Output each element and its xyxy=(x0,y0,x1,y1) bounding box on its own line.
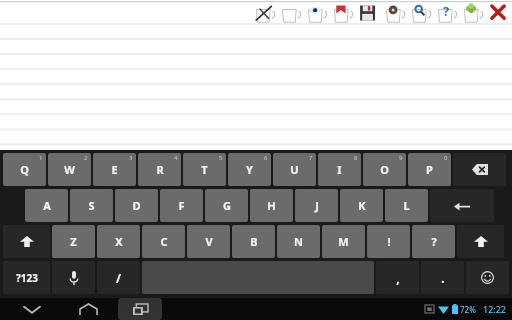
button[interactable]: Shift xyxy=(3,225,50,258)
staticText: R xyxy=(156,162,164,177)
button[interactable]: D xyxy=(115,189,158,222)
button[interactable]: / xyxy=(97,261,140,294)
button[interactable]: N xyxy=(277,225,320,258)
button[interactable]: ?123 xyxy=(3,261,50,294)
button[interactable]: Close xyxy=(486,1,510,25)
button[interactable]: L xyxy=(385,189,428,222)
staticText: / xyxy=(116,270,121,286)
staticText: 6 xyxy=(264,154,268,162)
button[interactable]: W xyxy=(48,153,91,186)
staticText: L xyxy=(403,198,410,213)
button[interactable]: U xyxy=(273,153,316,186)
button[interactable]: Emoji xyxy=(466,261,509,294)
staticText: Q xyxy=(20,162,29,177)
button[interactable]: A xyxy=(25,189,68,222)
button[interactable]: Recent apps xyxy=(118,298,162,320)
button[interactable]: Bookmark xyxy=(330,1,354,25)
button[interactable]: New xyxy=(278,1,302,25)
staticText: ! xyxy=(387,234,391,249)
staticText: A xyxy=(43,198,51,213)
staticText: P xyxy=(426,162,433,177)
staticText: G xyxy=(223,198,231,213)
staticText: 72% xyxy=(460,304,476,315)
button[interactable]: Z xyxy=(52,225,95,258)
button[interactable]: Find xyxy=(408,1,432,25)
button[interactable]: Y xyxy=(228,153,271,186)
button[interactable]: Backspace xyxy=(453,153,506,186)
button[interactable]: ? xyxy=(412,225,455,258)
staticText: 2 xyxy=(84,154,88,162)
button[interactable]: Home xyxy=(66,298,110,320)
staticText: ? xyxy=(443,2,450,20)
staticText: V xyxy=(205,234,213,249)
staticText: J xyxy=(315,198,319,213)
button[interactable]: ! xyxy=(367,225,410,258)
staticText: D xyxy=(132,198,141,213)
button[interactable]: Q xyxy=(3,153,46,186)
staticText: , xyxy=(396,270,400,286)
staticText: Z xyxy=(70,234,77,249)
button[interactable]: . xyxy=(421,261,464,294)
staticText: 3 xyxy=(129,154,133,162)
staticText: 8 xyxy=(354,154,358,162)
button[interactable]: Print xyxy=(382,1,406,25)
button[interactable]: , xyxy=(376,261,419,294)
staticText: K xyxy=(358,198,366,213)
button[interactable]: H xyxy=(250,189,293,222)
staticText: T xyxy=(201,162,208,177)
staticText: ?123 xyxy=(16,271,38,285)
staticText: 0 xyxy=(444,154,448,162)
button[interactable]: T xyxy=(183,153,226,186)
staticText: F xyxy=(178,198,185,213)
staticText: 5 xyxy=(219,154,223,162)
button[interactable]: K xyxy=(340,189,383,222)
staticText: O xyxy=(380,162,389,177)
staticText: M xyxy=(338,234,349,249)
button[interactable]: Tree xyxy=(460,1,484,25)
button[interactable]: X xyxy=(97,225,140,258)
button[interactable]: S xyxy=(70,189,113,222)
staticText: ? xyxy=(431,234,437,249)
staticText: 12:22 xyxy=(483,303,507,315)
button[interactable]: G xyxy=(205,189,248,222)
button[interactable]: F xyxy=(160,189,203,222)
button[interactable]: View xyxy=(304,1,328,25)
staticText: 7 xyxy=(309,154,313,162)
button[interactable]: V xyxy=(187,225,230,258)
staticText: 1 xyxy=(39,154,43,162)
button[interactable]: Save xyxy=(356,1,380,25)
button[interactable]: R xyxy=(138,153,181,186)
staticText: . xyxy=(441,270,445,286)
button[interactable]: Undo xyxy=(252,1,276,25)
staticText: E xyxy=(111,162,118,177)
staticText: I xyxy=(337,162,342,177)
staticText: N xyxy=(294,234,303,249)
button[interactable]: M xyxy=(322,225,365,258)
button[interactable]: J xyxy=(295,189,338,222)
staticText: W xyxy=(64,162,75,177)
staticText: X xyxy=(115,234,123,249)
button[interactable]: P xyxy=(408,153,451,186)
staticText: C xyxy=(160,234,168,249)
button[interactable]: Voice input xyxy=(52,261,95,294)
button[interactable]: E xyxy=(93,153,136,186)
staticText: U xyxy=(290,162,299,177)
button[interactable]: B xyxy=(232,225,275,258)
staticText: S xyxy=(88,198,95,213)
staticText: H xyxy=(267,198,276,213)
button[interactable]: Help xyxy=(434,1,458,25)
button[interactable]: O xyxy=(363,153,406,186)
button[interactable]: C xyxy=(142,225,185,258)
staticText: 4 xyxy=(174,154,178,162)
button[interactable]: Shift right xyxy=(457,225,504,258)
button[interactable]: Back xyxy=(10,298,54,320)
staticText: 9 xyxy=(399,154,403,162)
staticText: B xyxy=(250,234,258,249)
button[interactable]: I xyxy=(318,153,361,186)
staticText: Y xyxy=(246,162,253,177)
button[interactable]: Enter xyxy=(430,189,494,222)
